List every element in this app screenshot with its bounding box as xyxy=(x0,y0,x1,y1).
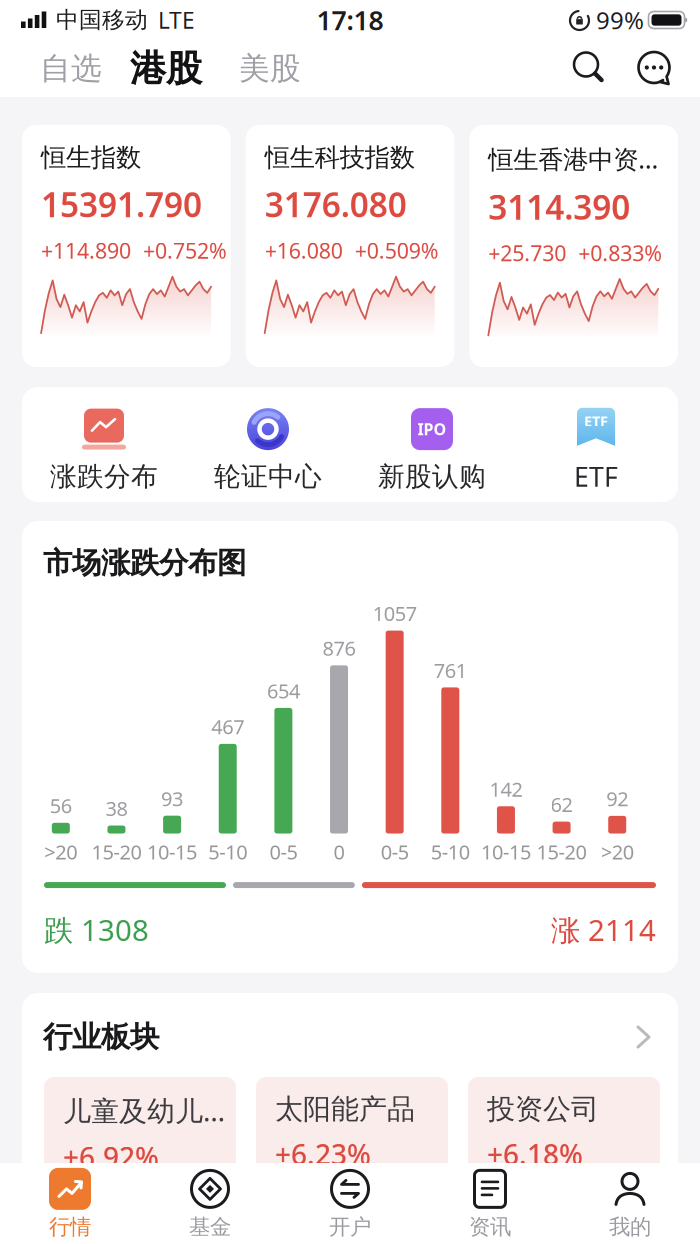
staticText: 基金 xyxy=(189,1214,231,1240)
staticText: 恒生香港中资… xyxy=(488,142,658,176)
staticText: 876 xyxy=(322,635,355,661)
staticText: 99% xyxy=(596,4,644,36)
staticText: 恒生指数 xyxy=(41,142,141,173)
staticText: 新股认购 xyxy=(378,460,486,493)
staticText: +25.730 +0.833% xyxy=(488,239,662,267)
button[interactable]: 轮证中心 xyxy=(186,396,350,493)
staticText: +6.18% xyxy=(487,1135,583,1173)
staticText: +114.890 +0.752% xyxy=(41,236,227,265)
staticText: 行业板块 xyxy=(43,1019,159,1055)
staticText: 跌 1308 xyxy=(44,910,149,949)
staticText: IPO xyxy=(417,418,446,440)
staticText: ETF xyxy=(574,459,618,494)
staticText: 0-5 xyxy=(381,838,409,865)
staticText: 15391.790 xyxy=(41,182,202,226)
staticText: 654 xyxy=(267,677,300,704)
staticText: 儿童及幼儿… xyxy=(63,1092,225,1129)
staticText: 投资公司 xyxy=(487,1092,599,1126)
staticText: 38 xyxy=(105,795,127,822)
staticText: 涨 2114 xyxy=(551,910,656,949)
button[interactable]: 基金 xyxy=(140,1167,280,1240)
staticText: 涨跌分布 xyxy=(50,460,158,493)
staticText: 1057 xyxy=(373,600,417,627)
staticText: 太阳能产品 xyxy=(275,1092,415,1126)
button[interactable]: 资讯 xyxy=(420,1167,560,1240)
button[interactable]: 太阳能产品 xyxy=(256,1077,448,1199)
staticText: 0 xyxy=(333,838,344,865)
staticText: 15-20 xyxy=(91,838,141,865)
button[interactable]: ETF xyxy=(514,395,678,494)
staticText: +6.23% xyxy=(275,1135,371,1173)
staticText: 467 xyxy=(211,713,244,740)
button[interactable]: 投资公司 xyxy=(468,1077,660,1199)
staticText: 自选 xyxy=(40,50,102,87)
staticText: 15-20 xyxy=(537,838,587,865)
staticText: +16.080 +0.509% xyxy=(265,236,439,265)
staticText: 5-10 xyxy=(208,838,247,865)
button[interactable]: 涨跌分布 xyxy=(22,396,186,493)
button[interactable]: 行情 xyxy=(0,1167,140,1240)
staticText: 10-15 xyxy=(481,838,531,865)
button[interactable]: 恒生指数 xyxy=(22,125,231,367)
staticText: >20 xyxy=(601,838,634,865)
staticText: 行情 xyxy=(49,1214,91,1240)
staticText: 资讯 xyxy=(469,1214,511,1240)
staticText: 0-5 xyxy=(269,838,297,865)
staticText: 3114.390 xyxy=(488,185,630,229)
button[interactable]: 恒生香港中资… xyxy=(469,125,678,367)
staticText: 761 xyxy=(434,657,467,683)
button[interactable]: 客服消息 xyxy=(635,48,673,88)
staticText: 轮证中心 xyxy=(214,460,322,493)
button[interactable]: 搜索 xyxy=(571,48,607,88)
staticText: >20 xyxy=(44,838,77,865)
staticText: 开户 xyxy=(329,1214,371,1240)
staticText: 3176.080 xyxy=(265,182,407,226)
button[interactable]: 我的 xyxy=(560,1167,700,1240)
button[interactable]: 自选 xyxy=(40,50,102,87)
staticText: 93 xyxy=(161,785,183,812)
button[interactable]: 美股 xyxy=(239,50,301,87)
staticText: 中国移动 xyxy=(56,6,148,34)
staticText: 5-10 xyxy=(431,838,470,865)
button[interactable]: IPO xyxy=(350,396,514,493)
staticText: 142 xyxy=(489,776,522,802)
staticText: 美股 xyxy=(239,50,301,87)
staticText: 92 xyxy=(606,785,628,812)
staticText: 17:18 xyxy=(316,2,383,38)
staticText: 62 xyxy=(551,791,573,818)
staticText: 我的 xyxy=(609,1214,651,1240)
button[interactable]: 行业板块 xyxy=(22,993,678,1055)
staticText: 市场涨跌分布图 xyxy=(43,545,246,581)
staticText: +6.92% xyxy=(63,1138,159,1175)
button[interactable]: 恒生科技指数 xyxy=(246,125,454,367)
staticText: 56 xyxy=(50,792,72,819)
staticText: ETF xyxy=(584,411,608,431)
button[interactable]: 开户 xyxy=(280,1167,420,1240)
staticText: 10-15 xyxy=(147,838,197,865)
staticText: LTE xyxy=(158,5,195,35)
staticText: 恒生科技指数 xyxy=(265,142,415,173)
button[interactable]: 港股 xyxy=(130,46,202,91)
staticText: 港股 xyxy=(130,46,202,91)
button[interactable]: 儿童及幼儿… xyxy=(44,1077,236,1199)
